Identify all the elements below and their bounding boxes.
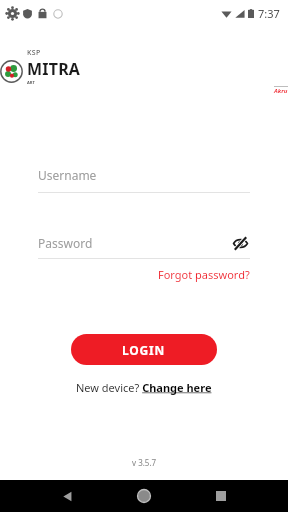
button[interactable]: LOGIN bbox=[71, 334, 217, 365]
staticText: LOGIN bbox=[122, 342, 166, 358]
staticText: ART bbox=[27, 80, 35, 85]
button[interactable]: Show password bbox=[230, 233, 250, 253]
staticText: New device? Change here bbox=[76, 380, 212, 395]
staticText: 7:37 bbox=[258, 6, 280, 21]
staticText: MITRA bbox=[27, 58, 81, 80]
staticText: KSP bbox=[27, 48, 41, 58]
staticText: v 3.5.7 bbox=[132, 457, 157, 468]
button[interactable]: Home bbox=[132, 484, 156, 508]
staticText: Akru bbox=[274, 87, 288, 95]
staticText: Username bbox=[38, 167, 97, 183]
button[interactable]: Forgot password? bbox=[158, 267, 250, 282]
button[interactable]: Back bbox=[56, 485, 78, 507]
button[interactable]: Recent apps bbox=[210, 485, 232, 507]
staticText: Password bbox=[38, 235, 230, 251]
button[interactable]: Password bbox=[38, 233, 250, 253]
button[interactable]: New device? Change here bbox=[76, 380, 212, 395]
staticText: Forgot password? bbox=[158, 267, 250, 282]
button[interactable]: Username bbox=[38, 167, 250, 193]
